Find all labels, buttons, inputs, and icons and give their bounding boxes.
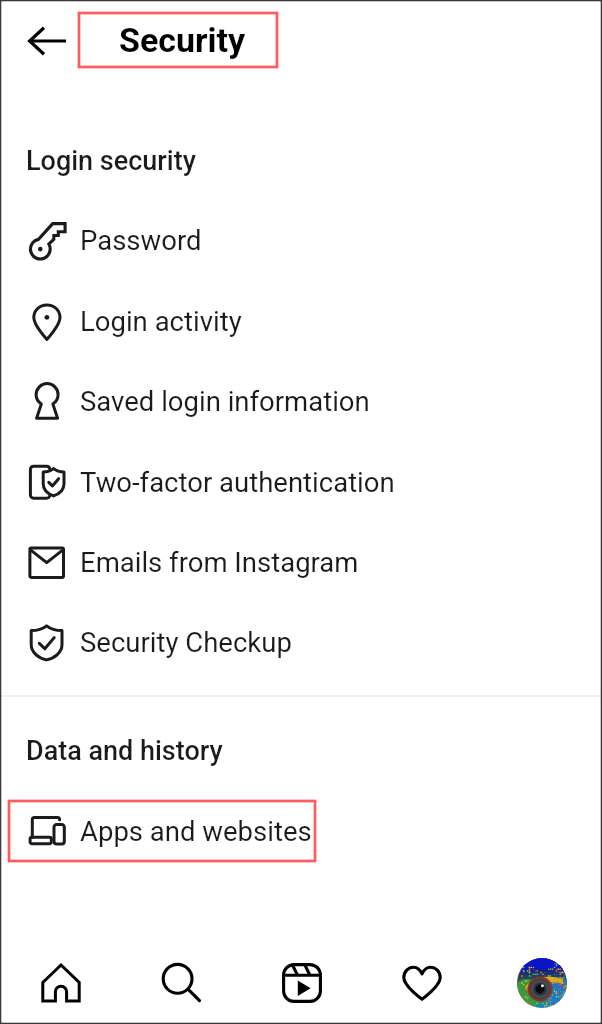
button[interactable]: Profile <box>482 941 602 1024</box>
staticText: Security <box>119 20 246 60</box>
button[interactable]: Security Checkup <box>0 602 602 682</box>
button[interactable]: Back <box>17 14 71 68</box>
staticText: Apps and websites <box>80 815 312 847</box>
staticText: Security Checkup <box>80 626 292 658</box>
staticText: Login security <box>26 145 196 177</box>
staticText: Data and history <box>26 735 223 767</box>
button[interactable]: Security <box>83 13 281 67</box>
staticText: Login activity <box>80 305 242 337</box>
button[interactable]: Reels <box>242 941 362 1024</box>
button[interactable]: Password <box>0 200 602 280</box>
button[interactable]: Login activity <box>0 281 602 361</box>
button[interactable]: Apps and websites <box>0 791 602 871</box>
button[interactable]: Emails from Instagram <box>0 522 602 602</box>
button[interactable]: Search <box>121 941 242 1024</box>
button[interactable]: Two-factor authentication <box>0 442 602 522</box>
button[interactable]: Home <box>0 941 121 1024</box>
button[interactable]: Activity <box>362 941 482 1024</box>
staticText: Two-factor authentication <box>80 466 395 498</box>
staticText: Saved login information <box>80 385 370 417</box>
staticText: Emails from Instagram <box>80 546 359 578</box>
button[interactable]: Saved login information <box>0 361 602 441</box>
staticText: Password <box>80 224 202 256</box>
